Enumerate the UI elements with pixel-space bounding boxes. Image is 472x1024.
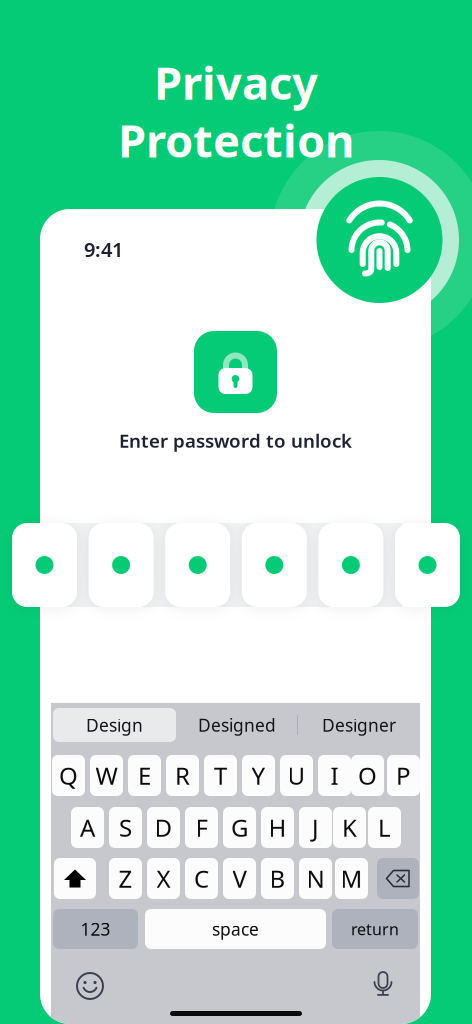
staticText: C xyxy=(194,863,209,894)
button[interactable]: Q xyxy=(52,755,85,796)
staticText: K xyxy=(342,812,357,843)
staticText: T xyxy=(214,760,227,791)
button[interactable]: A xyxy=(71,807,104,848)
staticText: S xyxy=(119,812,132,843)
button[interactable]: Designer xyxy=(298,708,420,742)
button[interactable]: space xyxy=(145,909,326,949)
button[interactable]: Shift xyxy=(54,858,96,899)
button[interactable]: B xyxy=(261,858,294,899)
button[interactable]: 123 xyxy=(53,909,138,949)
button[interactable]: O xyxy=(351,755,384,796)
staticText: X xyxy=(156,863,170,894)
button[interactable]: Dictation xyxy=(371,971,395,999)
button[interactable]: Emoji keyboard xyxy=(77,973,103,999)
staticText: return xyxy=(351,918,399,940)
staticText: Privacy xyxy=(154,52,318,112)
button[interactable]: T xyxy=(204,755,237,796)
button[interactable]: N xyxy=(299,858,332,899)
staticText: P xyxy=(396,760,411,791)
button[interactable]: Passcode digit xyxy=(89,523,154,607)
staticText: E xyxy=(138,760,151,791)
button[interactable]: Delete xyxy=(377,858,419,899)
staticText: U xyxy=(287,760,305,791)
staticText: F xyxy=(195,812,207,843)
button[interactable]: P xyxy=(387,755,420,796)
staticText: G xyxy=(231,812,248,843)
button[interactable]: X xyxy=(147,858,180,899)
button[interactable]: Passcode digit xyxy=(318,523,383,607)
staticText: A xyxy=(80,812,95,843)
staticText: R xyxy=(175,760,190,791)
staticText: D xyxy=(154,812,172,843)
button[interactable]: W xyxy=(90,755,123,796)
staticText: Y xyxy=(251,760,265,791)
staticText: V xyxy=(232,863,246,894)
button[interactable]: E xyxy=(128,755,161,796)
staticText: Q xyxy=(59,760,78,791)
button[interactable]: Y xyxy=(242,755,275,796)
staticText: B xyxy=(269,863,285,894)
button[interactable]: V xyxy=(223,858,256,899)
staticText: Design xyxy=(86,713,143,736)
button[interactable]: G xyxy=(223,807,256,848)
staticText: Enter password to unlock xyxy=(119,428,352,453)
staticText: 9:41 xyxy=(84,236,123,263)
button[interactable]: H xyxy=(261,807,294,848)
staticText: Z xyxy=(118,863,132,894)
staticText: H xyxy=(268,812,286,843)
staticText: Designed xyxy=(198,713,276,736)
button[interactable]: Z xyxy=(109,858,142,899)
staticText: L xyxy=(378,812,391,843)
staticText: M xyxy=(340,863,362,894)
button[interactable]: D xyxy=(147,807,180,848)
button[interactable]: S xyxy=(109,807,142,848)
staticText: W xyxy=(95,760,117,791)
staticText: O xyxy=(358,760,377,791)
button[interactable]: R xyxy=(166,755,199,796)
button[interactable]: U xyxy=(280,755,313,796)
button[interactable]: M xyxy=(335,858,368,899)
staticText: space xyxy=(212,917,259,940)
button[interactable]: return xyxy=(332,909,418,949)
button[interactable]: K xyxy=(333,807,366,848)
button[interactable]: Passcode digit xyxy=(12,523,77,607)
staticText: Protection xyxy=(118,110,354,170)
staticText: I xyxy=(330,760,338,791)
button[interactable]: I xyxy=(318,755,351,796)
button[interactable]: L xyxy=(368,807,401,848)
button[interactable]: Designed xyxy=(176,708,298,742)
staticText: 123 xyxy=(80,917,110,940)
button[interactable]: F xyxy=(185,807,218,848)
button[interactable]: J xyxy=(299,807,332,848)
button[interactable]: C xyxy=(185,858,218,899)
button[interactable]: Passcode digit xyxy=(242,523,307,607)
button[interactable]: Passcode digit xyxy=(165,523,230,607)
staticText: J xyxy=(312,812,319,843)
staticText: N xyxy=(306,863,324,894)
button[interactable]: Passcode digit xyxy=(395,523,460,607)
staticText: Designer xyxy=(322,713,396,736)
button[interactable]: Design xyxy=(53,708,176,742)
